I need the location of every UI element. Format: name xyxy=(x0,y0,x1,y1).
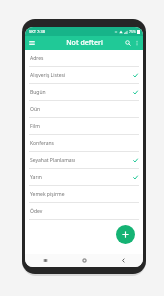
button[interactable]: Oün xyxy=(25,101,143,118)
staticText: Film xyxy=(30,123,40,130)
button[interactable]: Menu xyxy=(27,38,37,48)
button[interactable]: Film xyxy=(25,118,143,135)
staticText: Yemek pişirme xyxy=(30,191,65,198)
staticText: Not defteri xyxy=(66,38,103,48)
button[interactable]: Search xyxy=(123,38,133,48)
button[interactable]: Ödev xyxy=(25,203,143,220)
staticText: Yarın xyxy=(30,174,42,181)
staticText: Seyahat Planlaması xyxy=(30,157,76,164)
button[interactable]: Yarın xyxy=(25,169,143,186)
button[interactable]: Recents xyxy=(25,254,65,267)
staticText: Ödev xyxy=(30,208,43,215)
staticText: Oün xyxy=(30,106,41,113)
button[interactable]: Seyahat Planlaması xyxy=(25,152,143,169)
button[interactable]: Home xyxy=(65,254,104,267)
staticText: 75% xyxy=(129,29,136,34)
button[interactable]: Konferans xyxy=(25,135,143,152)
staticText: Bugün xyxy=(30,89,46,96)
button[interactable]: More options xyxy=(133,39,141,47)
button[interactable]: Back xyxy=(104,254,143,267)
button[interactable]: Bugün xyxy=(25,84,143,101)
staticText: SKT 7:38 xyxy=(29,29,45,34)
staticText: Adres xyxy=(30,55,44,62)
button[interactable]: Yemek pişirme xyxy=(25,186,143,203)
button[interactable]: Add note xyxy=(116,225,135,244)
button[interactable]: Alışveriş Listesi xyxy=(25,67,143,84)
button[interactable]: Adres xyxy=(25,50,143,67)
staticText: Alışveriş Listesi xyxy=(30,72,66,79)
staticText: Konferans xyxy=(30,140,55,147)
